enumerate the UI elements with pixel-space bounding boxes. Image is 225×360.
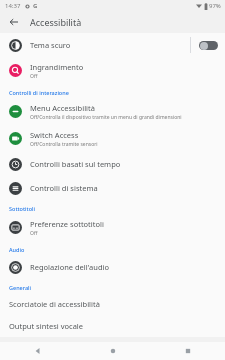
staticText: 14:37 [5,2,21,10]
button[interactable]: Output sintesi vocale [0,315,225,337]
button[interactable]: Controlli di sistema [0,176,225,200]
staticText: Tema scuro [30,40,190,50]
staticText: Off [30,73,38,80]
staticText: Controlli di interazione [9,89,69,96]
button[interactable]: Switch Access [0,125,225,152]
staticText: Ingrandimento [30,62,84,72]
button[interactable]: Tema scuro toggle [191,33,225,57]
button[interactable]: Controlli basati sul tempo [0,152,225,176]
staticText: 97% [209,2,221,10]
staticText: Controlli di sistema [30,183,98,193]
button[interactable]: Back [0,342,75,360]
staticText: Sottotitoli [9,205,35,212]
staticText: Menu Accessibilità [30,103,95,113]
staticText: G [33,2,38,10]
staticText: Off [30,230,38,237]
staticText: Preferenze sottotitoli [30,219,104,229]
button[interactable]: Preferenze sottotitoli [0,214,225,241]
button[interactable]: Regolazione dell'audio [0,255,225,279]
staticText: Regolazione dell'audio [30,262,110,272]
button[interactable]: Menu Accessibilità [0,98,225,125]
staticText: Off/Controlla il dispositivo tramite un … [30,114,182,121]
staticText: Controlli basati sul tempo [30,159,121,169]
staticText: Generali [9,284,32,291]
staticText: Audio [9,246,25,253]
staticText: Accessibilità [30,16,82,28]
button[interactable]: Back [3,11,25,33]
staticText: Switch Access [30,130,79,140]
button[interactable]: Scorciatoie di accessibilità [0,293,225,315]
button[interactable]: Tema scuro [0,33,225,57]
button[interactable]: Home [75,342,150,360]
button[interactable]: Recent apps [150,342,225,360]
staticText: Off/Controlla tramite sensori [30,141,98,148]
staticText: Output sintesi vocale [9,321,84,331]
button[interactable]: Ingrandimento [0,57,225,84]
staticText: Scorciatoie di accessibilità [9,299,100,309]
